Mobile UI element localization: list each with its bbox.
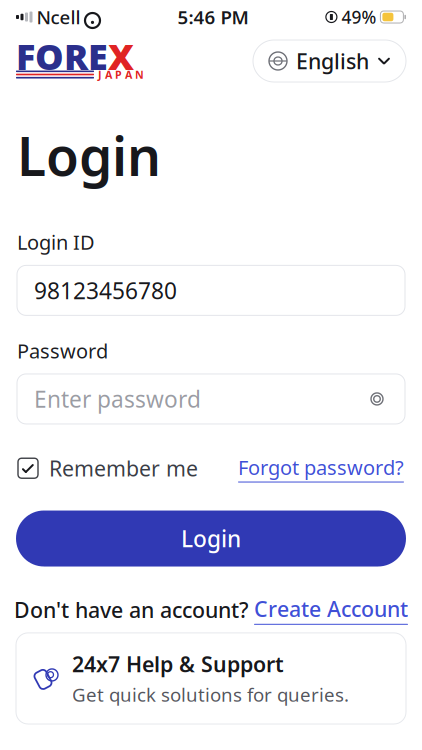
staticText: Forgot password? [238,454,404,480]
staticText: 24x7 Help & Support [72,650,284,678]
staticText: X [108,32,134,80]
staticText: 5:46 PM [177,5,248,29]
staticText: Ncell [36,5,80,29]
button[interactable]: 24x7 Help & Support [16,633,406,724]
staticText: Enter password [34,384,201,414]
staticText: J A P A N [98,67,144,82]
staticText: Login [17,120,161,191]
staticText: Create Account [254,594,408,623]
button[interactable]: Forgot password? [238,450,404,486]
staticText: Password [17,337,108,364]
staticText: 49% [341,5,376,28]
staticText: English [296,47,369,75]
staticText: Remember me [49,454,198,482]
button[interactable]: Login [16,510,406,566]
button[interactable]: Remember me [18,450,198,486]
staticText: Login [181,523,241,554]
staticText: Login ID [17,229,95,255]
button[interactable]: Create Account [254,594,408,625]
button[interactable]: English [253,40,406,82]
staticText: 98123456780 [34,275,177,305]
staticText: Get quick solutions for queries. [72,682,349,707]
staticText: FORE [16,32,108,80]
staticText: Don't have an account? [14,595,249,624]
